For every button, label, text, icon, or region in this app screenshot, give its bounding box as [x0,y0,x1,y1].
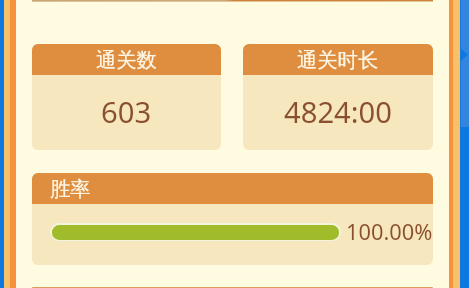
button[interactable]: 通关时长 [243,44,433,150]
staticText: 100.00% [346,217,433,247]
staticText: 通关时长 [297,47,379,73]
staticText: 通关数 [96,47,157,73]
staticText: 胜率 [50,176,91,202]
button[interactable]: 胜率 [32,173,433,265]
button[interactable]: 通关数 [32,44,221,150]
staticText: 4824:00 [284,92,392,132]
staticText: 603 [101,92,152,132]
